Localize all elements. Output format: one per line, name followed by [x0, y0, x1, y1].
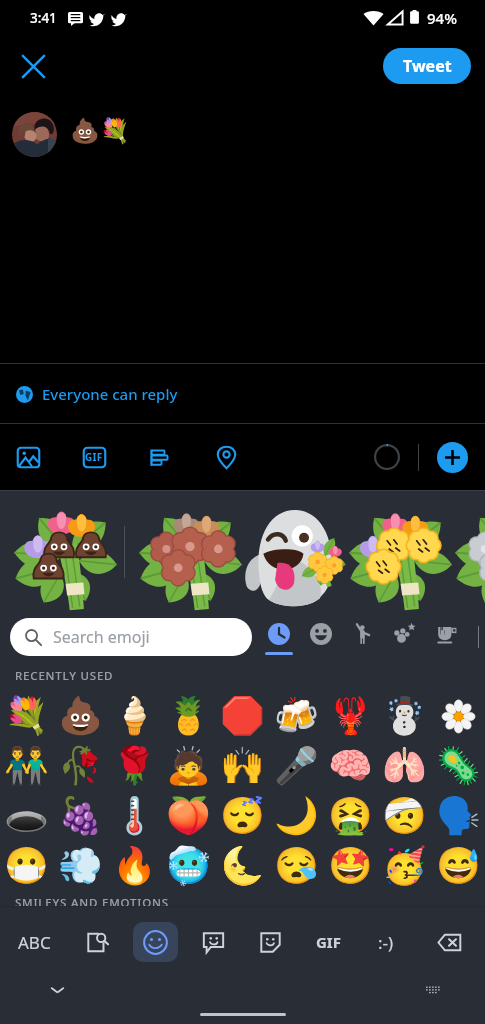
staticText: 😷 — [4, 845, 49, 887]
button[interactable]: Stickers — [185, 920, 241, 964]
button[interactable]: Add location — [193, 431, 259, 483]
staticText: 💩💐 — [70, 117, 130, 145]
button[interactable]: ☃️ — [377, 691, 431, 741]
staticText: 🔥 — [112, 845, 157, 887]
button[interactable]: 💨 — [53, 841, 107, 891]
button[interactable]: Add GIF — [61, 431, 127, 483]
button[interactable]: 🤩 — [323, 841, 377, 891]
button[interactable]: 😴 — [215, 791, 269, 841]
button[interactable]: 🍇 — [53, 791, 107, 841]
button[interactable]: 🎤 — [269, 741, 323, 791]
button[interactable]: Everyone can reply — [0, 364, 485, 423]
staticText: 🍦 — [112, 695, 157, 737]
button[interactable]: Custom stickers — [242, 920, 298, 964]
staticText: 💨 — [58, 845, 103, 887]
button[interactable] — [431, 691, 485, 741]
staticText: 🙇 — [166, 745, 211, 787]
staticText: 🙌 — [220, 745, 265, 787]
staticText: 🍇 — [58, 795, 103, 837]
button[interactable]: 💩 — [53, 691, 107, 741]
button[interactable] — [258, 613, 300, 661]
staticText: 🦞 — [328, 695, 373, 737]
staticText: ABC — [18, 931, 51, 954]
button[interactable]: 🗣 — [431, 791, 485, 841]
staticText: :-) — [378, 931, 394, 954]
button[interactable]: 🥀 — [53, 741, 107, 791]
button[interactable]: Ghost with bouquet emoji — [235, 497, 353, 615]
staticText: 😪 — [274, 845, 319, 887]
button[interactable]: 🤮 — [323, 791, 377, 841]
button[interactable]: 👬 — [0, 741, 53, 791]
button[interactable]: Grey bouquet emoji — [447, 497, 485, 615]
staticText: 😴 — [220, 795, 265, 837]
button[interactable]: 🥳 — [377, 841, 431, 891]
button[interactable]: :-) — [358, 920, 414, 964]
button[interactable]: 🦞 — [323, 691, 377, 741]
button[interactable]: ABC — [6, 920, 62, 964]
button[interactable]: 🔥 — [107, 841, 161, 891]
button[interactable]: 😅 — [431, 841, 485, 891]
staticText: GIF — [316, 932, 341, 952]
button[interactable]: 🍑 — [161, 791, 215, 841]
button[interactable]: Change keyboard — [417, 974, 447, 1004]
staticText: Search emoji — [53, 626, 150, 648]
staticText: 🦠 — [436, 745, 481, 787]
button[interactable]: 🌹 — [107, 741, 161, 791]
button[interactable]: Bouquet with poop emoji — [6, 497, 124, 615]
button[interactable]: 🍍 — [161, 691, 215, 741]
staticText: 🥶 — [166, 845, 211, 887]
button[interactable]: 🧠 — [323, 741, 377, 791]
button[interactable]: Emoji — [133, 922, 178, 962]
staticText: RECENTLY USED — [15, 668, 114, 684]
button[interactable]: Brown bouquet emoji — [131, 497, 249, 615]
button[interactable]: 🙇 — [161, 741, 215, 791]
button[interactable]: 🤕 — [377, 791, 431, 841]
staticText: 🤮 — [328, 795, 373, 837]
button[interactable]: 🛑 — [215, 691, 269, 741]
button[interactable]: Close — [13, 46, 53, 86]
button[interactable] — [342, 613, 384, 661]
staticText: 🗣 — [436, 795, 481, 837]
button[interactable]: 💐 — [0, 691, 53, 741]
button[interactable]: Search emoji — [10, 618, 252, 656]
button[interactable]: Search stickers — [69, 920, 125, 964]
staticText: 🍑 — [166, 795, 211, 837]
button[interactable]: Add photo — [0, 431, 61, 483]
staticText: 🥳 — [382, 845, 427, 887]
button[interactable] — [384, 613, 426, 661]
button[interactable] — [300, 613, 342, 661]
staticText: 🍻 — [274, 695, 319, 737]
button[interactable]: Bouquet with star-struck emoji — [341, 497, 459, 615]
staticText: Tweet — [403, 55, 452, 77]
button[interactable]: 😪 — [269, 841, 323, 891]
button[interactable]: 🦠 — [431, 741, 485, 791]
button[interactable]: 🥶 — [161, 841, 215, 891]
button[interactable]: 🌡 — [107, 791, 161, 841]
button[interactable]: 🍻 — [269, 691, 323, 741]
staticText: 🍍 — [166, 695, 211, 737]
button[interactable]: Backspace — [421, 920, 477, 964]
staticText: GIF — [85, 450, 103, 464]
staticText: 🌜 — [220, 845, 265, 887]
staticText: 🛑 — [220, 695, 265, 737]
button[interactable]: Add poll — [127, 431, 193, 483]
button[interactable]: Add another tweet — [437, 442, 468, 473]
staticText: 94% — [427, 8, 457, 28]
staticText: SMILEYS AND EMOTIONS — [15, 895, 169, 906]
button[interactable]: 🫁 — [377, 741, 431, 791]
button[interactable] — [426, 613, 468, 661]
button[interactable]: 🕳 — [0, 791, 53, 841]
button[interactable]: 🌙 — [269, 791, 323, 841]
staticText: Everyone can reply — [42, 384, 178, 404]
staticText: 🕳 — [4, 795, 49, 837]
button[interactable]: Tweet — [383, 48, 471, 84]
button[interactable]: GIF — [300, 920, 356, 964]
staticText: 3:41 — [30, 9, 57, 27]
staticText: 💩 — [58, 695, 103, 737]
button[interactable]: 🍦 — [107, 691, 161, 741]
button[interactable]: Hide keyboard — [42, 974, 72, 1004]
button[interactable]: 🌜 — [215, 841, 269, 891]
button[interactable]: 🙌 — [215, 741, 269, 791]
staticText: 🫁 — [382, 745, 427, 787]
button[interactable]: 😷 — [0, 841, 53, 891]
